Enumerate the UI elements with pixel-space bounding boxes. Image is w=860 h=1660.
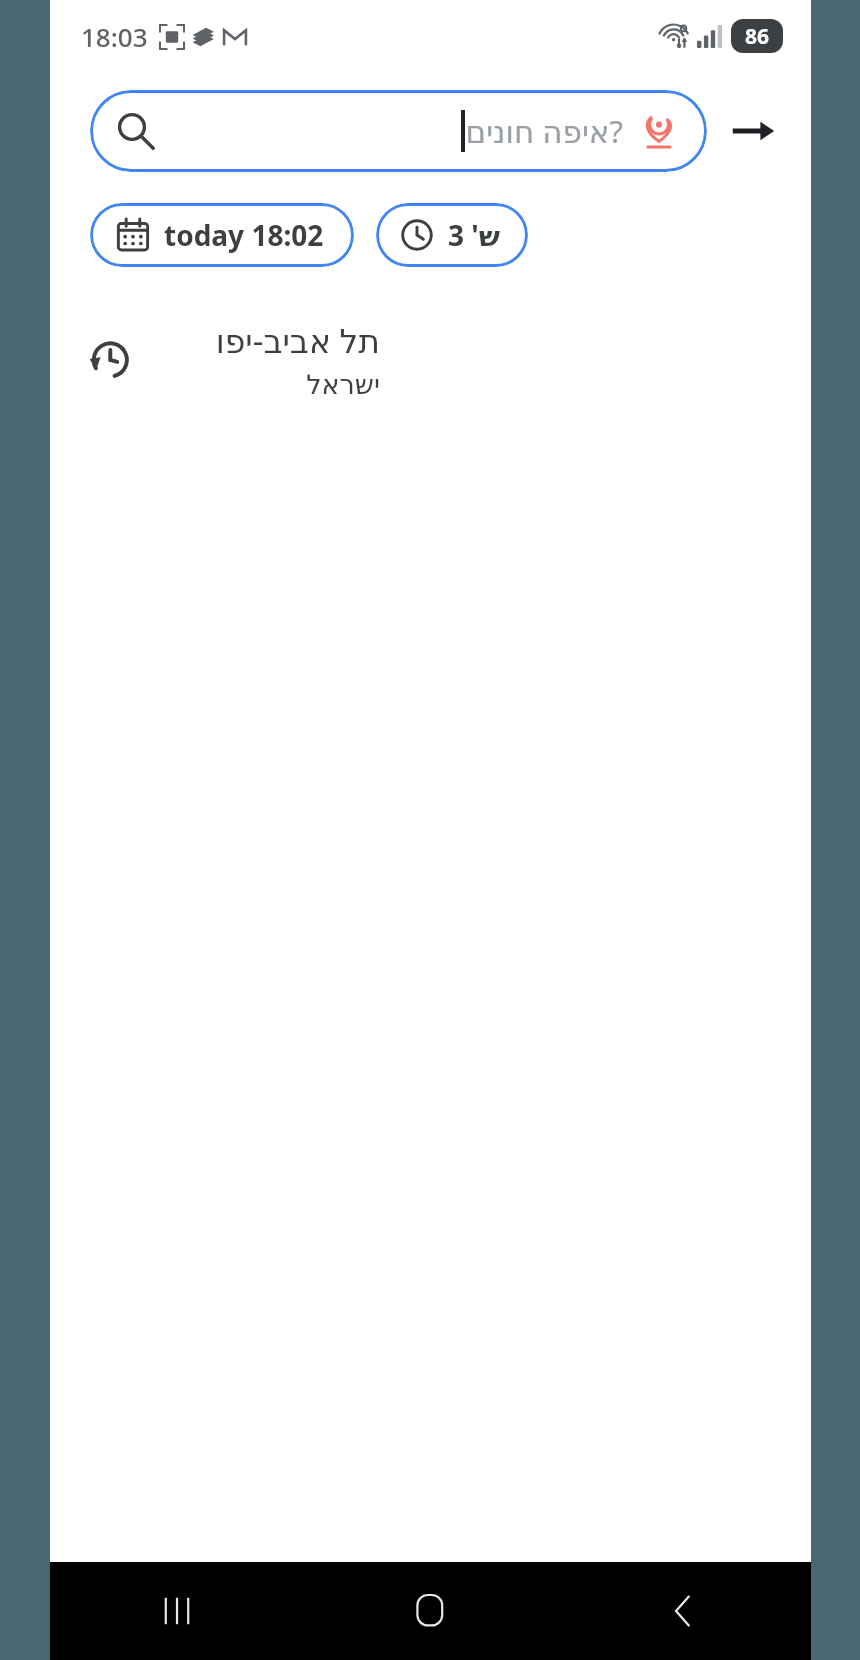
button[interactable]: My location xyxy=(637,109,681,153)
button[interactable]: today 18:02 xyxy=(90,203,354,267)
button[interactable]: איפה חונים? xyxy=(90,90,707,172)
staticText: תל אביב-יפו xyxy=(215,318,380,363)
staticText: איפה חונים? xyxy=(465,110,623,152)
button[interactable]: ש' 3 xyxy=(376,203,528,267)
button[interactable]: תל אביב-יפו xyxy=(50,312,811,406)
button[interactable]: Recents xyxy=(133,1567,221,1655)
button[interactable]: Back xyxy=(640,1567,728,1655)
staticText: ש' 3 xyxy=(448,216,500,254)
staticText: ישראל xyxy=(306,369,380,400)
button[interactable]: Submit search xyxy=(723,101,783,161)
staticText: 18:03 xyxy=(81,19,148,54)
button[interactable]: Home xyxy=(387,1567,475,1655)
staticText: today 18:02 xyxy=(164,216,324,254)
staticText: 86 xyxy=(745,22,770,51)
